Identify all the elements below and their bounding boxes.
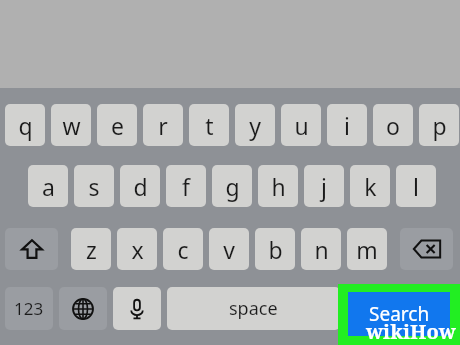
button[interactable]: e: [97, 104, 137, 146]
button[interactable]: t: [189, 104, 229, 146]
button[interactable]: m: [347, 228, 387, 270]
button[interactable]: i: [327, 104, 367, 146]
staticText: e: [111, 110, 124, 141]
staticText: g: [225, 171, 240, 202]
button[interactable]: y: [235, 104, 275, 146]
button[interactable]: f: [166, 165, 206, 207]
staticText: v: [223, 234, 235, 265]
staticText: j: [321, 171, 327, 202]
staticText: o: [386, 110, 400, 141]
button[interactable]: p: [419, 104, 459, 146]
staticText: s: [88, 171, 100, 202]
staticText: z: [86, 234, 97, 265]
button[interactable]: 123: [5, 287, 53, 330]
button[interactable]: k: [350, 165, 390, 207]
staticText: t: [205, 110, 214, 141]
button[interactable]: a: [28, 165, 68, 207]
staticText: d: [133, 171, 148, 202]
staticText: Search: [369, 301, 430, 327]
button[interactable]: Search: [348, 292, 450, 336]
button[interactable]: j: [304, 165, 344, 207]
button[interactable]: Change keyboard: [59, 287, 107, 330]
button[interactable]: d: [120, 165, 160, 207]
button[interactable]: v: [209, 228, 249, 270]
staticText: c: [177, 234, 189, 265]
button[interactable]: Dictation: [113, 287, 161, 330]
staticText: 123: [14, 297, 44, 320]
staticText: h: [271, 171, 286, 202]
staticText: f: [182, 171, 190, 202]
button[interactable]: s: [74, 165, 114, 207]
button[interactable]: z: [71, 228, 111, 270]
button[interactable]: u: [281, 104, 321, 146]
staticText: l: [413, 171, 419, 202]
button[interactable]: g: [212, 165, 252, 207]
staticText: n: [314, 234, 329, 265]
staticText: w: [62, 110, 81, 141]
staticText: b: [268, 234, 283, 265]
button[interactable]: c: [163, 228, 203, 270]
button[interactable]: q: [5, 104, 45, 146]
staticText: m: [356, 234, 378, 265]
staticText: How: [410, 318, 456, 345]
staticText: wiki: [366, 318, 410, 345]
button[interactable]: x: [117, 228, 157, 270]
button[interactable]: o: [373, 104, 413, 146]
staticText: k: [364, 171, 377, 202]
button[interactable]: b: [255, 228, 295, 270]
button[interactable]: w: [51, 104, 91, 146]
staticText: x: [131, 234, 144, 265]
button[interactable]: r: [143, 104, 183, 146]
button[interactable]: h: [258, 165, 298, 207]
staticText: u: [294, 110, 309, 141]
button[interactable]: space: [167, 287, 340, 330]
button[interactable]: Backspace: [400, 228, 453, 270]
button[interactable]: n: [301, 228, 341, 270]
staticText: y: [249, 110, 261, 141]
staticText: q: [18, 110, 33, 141]
button[interactable]: l: [396, 165, 436, 207]
staticText: i: [344, 110, 350, 141]
staticText: space: [229, 296, 278, 321]
staticText: r: [158, 110, 168, 141]
button[interactable]: Shift: [5, 228, 58, 270]
staticText: a: [42, 171, 55, 202]
staticText: p: [432, 110, 447, 141]
